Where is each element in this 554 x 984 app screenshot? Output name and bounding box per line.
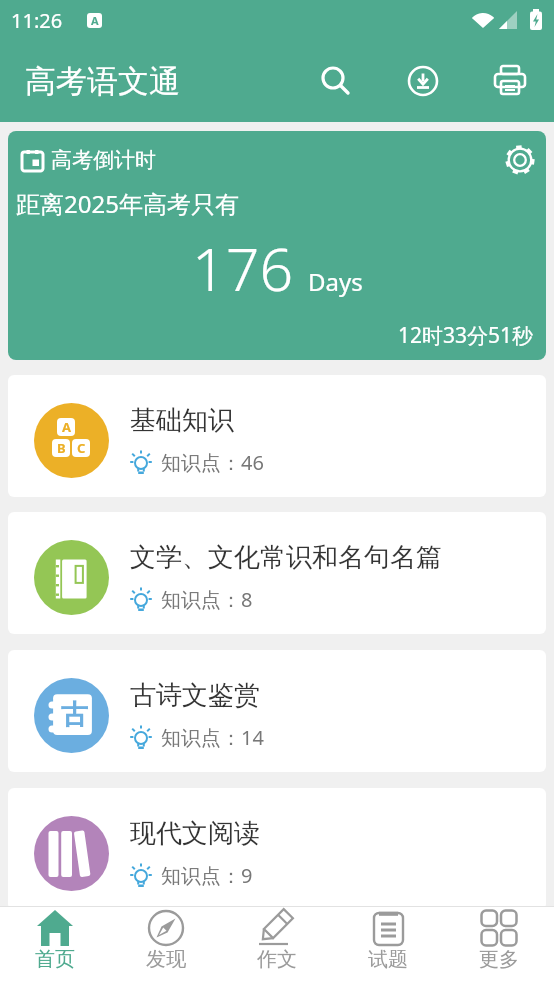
staticText: 高考语文通 <box>25 62 180 101</box>
staticText: 基础知识 <box>130 404 234 437</box>
staticText: 11:26 <box>11 7 63 34</box>
staticText: Days <box>308 265 363 298</box>
button[interactable]: 高考倒计时 <box>8 131 546 360</box>
staticText: 更多 <box>479 947 519 972</box>
button[interactable] <box>379 40 466 122</box>
staticText: 知识点：14 <box>161 724 264 751</box>
staticText: 知识点：46 <box>161 449 264 476</box>
staticText: A <box>62 418 71 436</box>
button[interactable]: 试题 <box>332 907 443 984</box>
button[interactable] <box>292 40 379 122</box>
staticText: 古诗文鉴赏 <box>130 679 260 712</box>
staticText: 试题 <box>368 947 408 972</box>
staticText: 现代文阅读 <box>130 817 260 850</box>
button[interactable]: 现代文阅读 <box>8 788 546 910</box>
button[interactable]: 古 <box>8 650 546 772</box>
staticText: 文学、文化常识和名句名篇 <box>130 541 442 574</box>
staticText: 首页 <box>35 947 75 972</box>
staticText: A <box>91 13 99 28</box>
staticText: 知识点：8 <box>161 586 253 613</box>
button[interactable] <box>466 40 554 122</box>
staticText: 高考倒计时 <box>51 147 156 173</box>
staticText: 12时33分51秒 <box>398 321 534 350</box>
staticText: 古 <box>61 698 88 732</box>
button[interactable]: 作文 <box>221 907 332 984</box>
button[interactable]: A <box>8 375 546 497</box>
staticText: 发现 <box>146 947 186 972</box>
staticText: 176 <box>192 228 294 308</box>
staticText: C <box>77 439 86 457</box>
button[interactable]: 更多 <box>443 907 554 984</box>
button[interactable]: 发现 <box>110 907 221 984</box>
button[interactable]: 首页 <box>0 907 110 984</box>
staticText: 距离2025年高考只有 <box>16 187 239 220</box>
button[interactable]: 文学、文化常识和名句名篇 <box>8 512 546 634</box>
staticText: 作文 <box>257 947 297 972</box>
staticText: B <box>57 439 66 457</box>
staticText: 知识点：9 <box>161 862 253 889</box>
